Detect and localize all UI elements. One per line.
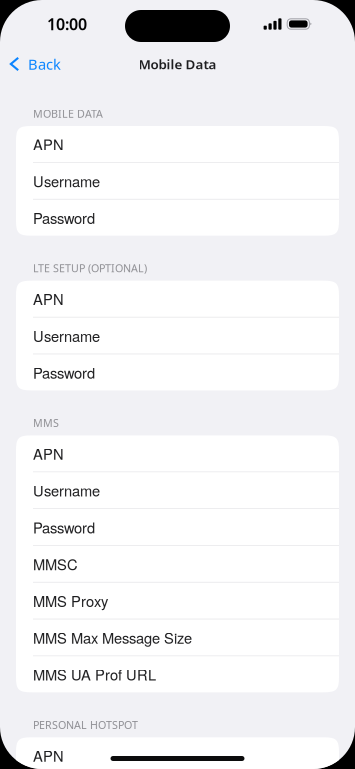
button[interactable]: APN	[16, 126, 339, 163]
staticText: MOBILE DATA	[33, 106, 103, 121]
staticText: APN	[33, 288, 64, 309]
staticText: MMS Proxy	[33, 590, 108, 611]
staticText: APN	[33, 745, 64, 766]
button[interactable]: Username	[16, 163, 339, 200]
staticText: Username	[33, 480, 100, 501]
button[interactable]: MMS Proxy	[16, 583, 339, 619]
button[interactable]: Password	[16, 354, 339, 390]
button[interactable]: MMS Max Message Size	[16, 619, 339, 656]
button[interactable]: Username	[16, 317, 339, 354]
button[interactable]: Password	[16, 509, 339, 546]
button[interactable]: Username	[16, 472, 339, 509]
staticText: MMSC	[33, 553, 78, 574]
button[interactable]: APN	[16, 737, 339, 769]
staticText: Password	[33, 207, 95, 228]
staticText: Back	[28, 54, 61, 74]
staticText: Password	[33, 516, 95, 537]
button[interactable]: APN	[16, 435, 339, 472]
button[interactable]: APN	[16, 281, 339, 317]
staticText: PERSONAL HOTSPOT	[33, 718, 138, 732]
staticText: Mobile Data	[138, 55, 216, 73]
staticText: APN	[33, 133, 64, 154]
staticText: 10:00	[47, 13, 87, 35]
staticText: MMS Max Message Size	[33, 627, 192, 648]
button[interactable]: MMSC	[16, 546, 339, 583]
staticText: MMS	[33, 416, 59, 430]
staticText: LTE SETUP (OPTIONAL)	[33, 261, 147, 275]
button[interactable]: MMS UA Prof URL	[16, 656, 339, 692]
staticText: APN	[33, 443, 64, 464]
staticText: Password	[33, 362, 95, 383]
staticText: MMS UA Prof URL	[33, 664, 156, 685]
staticText: Username	[33, 325, 100, 346]
staticText: Username	[33, 170, 100, 191]
button[interactable]: Back	[0, 46, 71, 82]
button[interactable]: Password	[16, 200, 339, 236]
